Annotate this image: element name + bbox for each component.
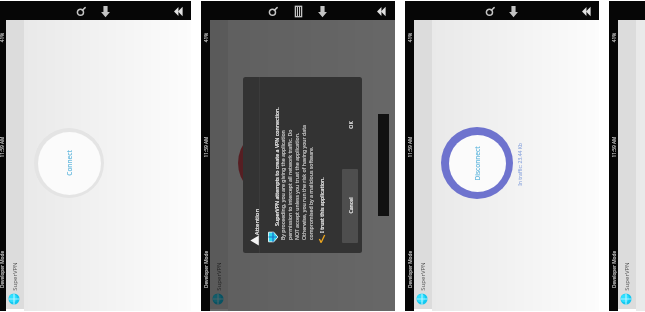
- staticText: Developer Mode: [202, 250, 209, 288]
- staticText: Developer Mode: [406, 250, 413, 288]
- staticText: 11:59 AM: [406, 136, 413, 157]
- button[interactable]: Cancel: [342, 169, 358, 243]
- button[interactable]: OK: [341, 85, 359, 165]
- button[interactable]: Connect: [34, 128, 104, 198]
- staticText: Developer Mode: [0, 250, 5, 288]
- staticText: Attention: [252, 208, 260, 235]
- other: Recent apps: [292, 5, 305, 18]
- staticText: In traffic: 23.44 Kb: [517, 143, 524, 186]
- other: Hide navigation bar: [173, 5, 186, 18]
- other: Hide navigation bar: [376, 5, 389, 18]
- staticText: 41%: [0, 32, 5, 42]
- staticText: 41%: [610, 32, 617, 42]
- other: Back: [316, 5, 329, 18]
- other: Back: [99, 5, 112, 18]
- staticText: 41%: [202, 32, 209, 42]
- other: Hide navigation bar: [581, 5, 594, 18]
- staticText: Disconnect: [473, 146, 482, 181]
- staticText: Connect: [65, 150, 74, 176]
- staticText: Cancel: [347, 197, 354, 214]
- staticText: OK: [347, 121, 354, 129]
- other: Back: [507, 5, 520, 18]
- staticText: By proceeding, you are giving the applic…: [279, 122, 314, 240]
- staticText: 11:59 AM: [0, 136, 5, 157]
- other: Home: [75, 5, 88, 18]
- staticText: SuperVPN: [419, 262, 427, 291]
- staticText: SuperVPN: [11, 262, 19, 291]
- other: Home: [484, 5, 497, 18]
- other: Home: [267, 5, 280, 18]
- button[interactable]: Disconnect: [441, 127, 513, 199]
- staticText: SuperVPN attempts to create a VPN connec…: [273, 107, 280, 226]
- staticText: 11:59 AM: [202, 136, 209, 157]
- staticText: 11:59 AM: [610, 136, 617, 157]
- staticText: SuperVPN: [215, 262, 223, 291]
- staticText: I trust this application.: [318, 177, 325, 233]
- staticText: 41%: [406, 32, 413, 42]
- staticText: Developer Mode: [610, 250, 617, 288]
- staticText: SuperVPN: [623, 262, 631, 291]
